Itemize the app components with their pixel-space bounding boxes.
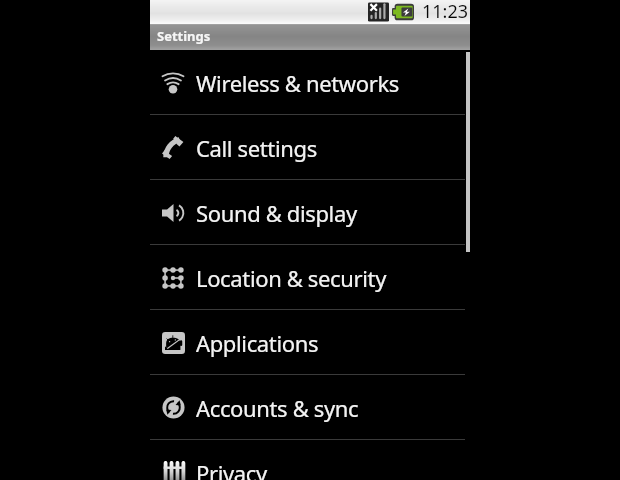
staticText: Privacy [196, 458, 267, 480]
staticText: Applications [196, 328, 319, 358]
button[interactable]: Privacy [150, 440, 470, 480]
staticText: Accounts & sync [196, 393, 359, 423]
button[interactable]: Accounts & sync [150, 375, 470, 440]
button[interactable]: Call settings [150, 115, 470, 180]
staticText: 11:23 [422, 0, 469, 22]
staticText: Wireless & networks [196, 68, 399, 98]
button[interactable]: Location & security [150, 245, 470, 310]
button[interactable]: Applications [150, 310, 470, 375]
button[interactable]: Wireless & networks [150, 50, 470, 115]
button[interactable]: Sound & display [150, 180, 470, 245]
staticText: Sound & display [196, 198, 357, 228]
staticText: Settings [157, 27, 211, 45]
staticText: Location & security [196, 263, 386, 293]
staticText: Call settings [196, 133, 317, 163]
